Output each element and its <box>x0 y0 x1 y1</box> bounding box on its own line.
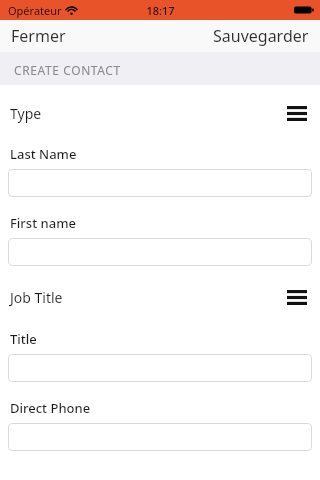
staticText: CREATE CONTACT <box>14 62 121 78</box>
staticText: 18:17 <box>146 3 175 18</box>
staticText: Type <box>10 104 42 123</box>
button[interactable] <box>8 169 312 197</box>
button[interactable]: Fermer <box>0 20 77 52</box>
staticText: Fermer <box>11 25 66 47</box>
staticText: Direct Phone <box>10 399 91 417</box>
staticText: Opérateur <box>8 3 62 18</box>
staticText: Last Name <box>10 145 77 163</box>
button[interactable] <box>8 238 312 266</box>
other: Select Type <box>284 100 310 126</box>
staticText: Sauvegarder <box>213 25 309 47</box>
button[interactable] <box>8 423 312 451</box>
staticText: First name <box>10 214 76 232</box>
staticText: Title <box>10 330 37 348</box>
staticText: Job Title <box>10 288 63 307</box>
button[interactable]: Sauvegarder <box>202 20 320 52</box>
other: Select Job Title <box>284 284 310 310</box>
button[interactable]: Job Title <box>0 284 320 310</box>
button[interactable] <box>8 354 312 382</box>
button[interactable]: Type <box>0 100 320 126</box>
